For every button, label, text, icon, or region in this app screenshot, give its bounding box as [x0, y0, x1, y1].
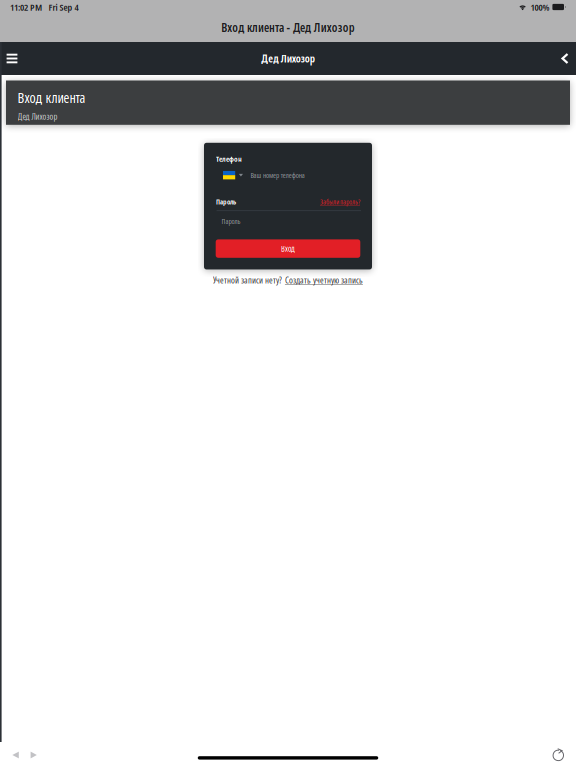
staticText: Создать учетную запись: [285, 274, 363, 286]
staticText: 11:02 PM: [10, 0, 42, 14]
button[interactable]: Забыли пароль?: [320, 197, 360, 207]
staticText: -: [286, 19, 290, 35]
staticText: Вход: [281, 243, 295, 254]
button[interactable]: Forward: [25, 747, 43, 763]
button[interactable]: Select country code: [223, 168, 246, 182]
staticText: клиента: [247, 19, 284, 35]
staticText: Лихозор: [314, 19, 355, 35]
staticText: Дед Лихозор: [17, 111, 57, 122]
staticText: Пароль: [216, 197, 236, 206]
staticText: телефона: [281, 170, 305, 180]
staticText: Дед: [293, 19, 311, 35]
button[interactable]: Вход: [216, 239, 360, 258]
staticText: Телефон: [216, 154, 242, 164]
staticText: Учетной записи нету?: [213, 274, 282, 286]
staticText: Вход: [221, 19, 244, 35]
button[interactable]: Reload: [547, 747, 576, 763]
button[interactable]: Создать учетную запись: [285, 274, 363, 286]
staticText: Дед: [261, 51, 278, 66]
staticText: Пароль: [222, 216, 241, 226]
staticText: номер: [263, 170, 279, 180]
staticText: Лихозор: [281, 51, 315, 66]
staticText: Забыли пароль?: [320, 197, 360, 207]
staticText: Ваш: [250, 170, 261, 180]
staticText: Вход клиента: [17, 88, 85, 107]
button[interactable]: Back: [552, 43, 576, 74]
staticText: Fri Sep 4: [48, 0, 78, 14]
staticText: 100%: [530, 0, 549, 14]
button[interactable]: Back: [0, 747, 25, 763]
button[interactable]: Menu: [0, 43, 26, 74]
